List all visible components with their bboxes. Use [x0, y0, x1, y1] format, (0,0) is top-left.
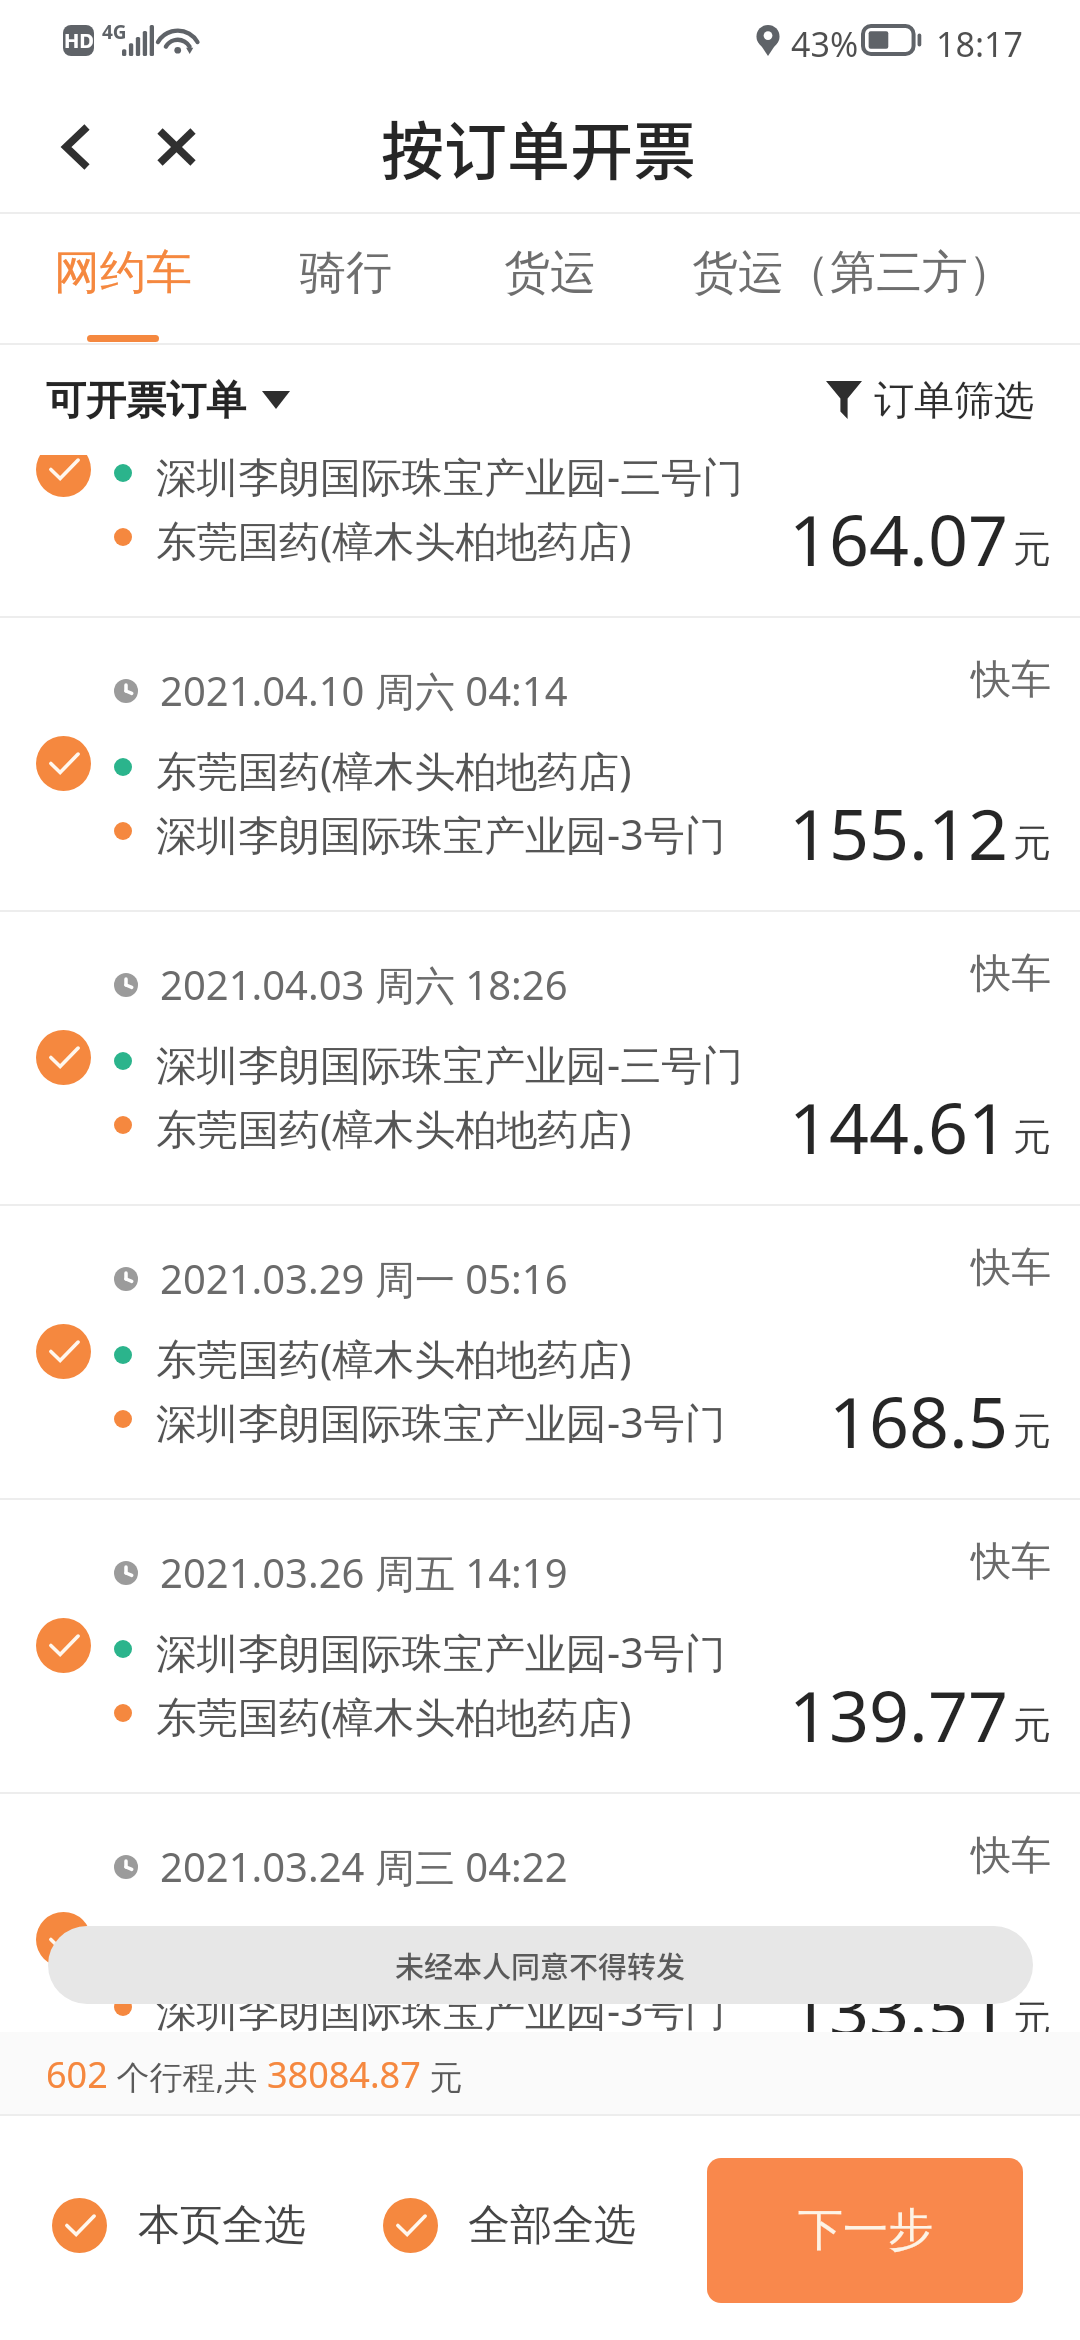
staticText: 订单筛选 — [874, 375, 1034, 425]
button[interactable]: 本页全选 — [52, 2198, 306, 2253]
staticText: 2021.04.03 周六 18:26 — [160, 957, 568, 1012]
staticText: 43% — [791, 21, 859, 67]
staticText: 未经本人同意不得转发 — [395, 1944, 686, 1986]
button[interactable]: 货运 — [480, 214, 619, 345]
staticText: HD — [64, 27, 94, 54]
staticText: 元 — [1013, 525, 1051, 573]
staticText: 货运（第三方） — [692, 244, 1014, 302]
staticText: 深圳李朗国际珠宝产业园-3号门 — [156, 1394, 726, 1450]
button[interactable]: Select order — [0, 455, 1080, 618]
staticText: 2021.04.10 周六 04:14 — [160, 663, 568, 718]
staticText: 网约车 — [54, 244, 192, 302]
staticText: 本页全选 — [138, 2199, 306, 2252]
button[interactable]: 可开票订单 — [46, 375, 290, 425]
staticText: 深圳李朗国际珠宝产业园-三号门 — [156, 455, 744, 504]
staticText: 深圳李朗国际珠宝产业园-3号门 — [156, 1624, 726, 1680]
staticText: 164.07 — [789, 491, 1008, 586]
button[interactable]: Select order — [36, 1030, 91, 1085]
staticText: 下一步 — [798, 2202, 933, 2259]
staticText: 2021.03.29 周一 05:16 — [160, 1251, 568, 1306]
staticText: 快车 — [971, 948, 1051, 998]
staticText: 东莞国药(樟木头柏地药店) — [156, 1688, 632, 1744]
button[interactable]: Select order — [36, 455, 91, 497]
staticText: 深圳李朗国际珠宝产业园-3号门 — [156, 1982, 726, 2032]
staticText: 东莞国药(樟木头柏地药店) — [156, 1918, 632, 1974]
staticText: 元 — [1013, 819, 1051, 867]
staticText: 快车 — [971, 1830, 1051, 1880]
staticText: 快车 — [971, 1242, 1051, 1292]
button[interactable]: Select order — [0, 1794, 1080, 2032]
button[interactable]: 全部全选 — [383, 2198, 636, 2253]
staticText: 元 — [1013, 1407, 1051, 1455]
staticText: 全部全选 — [468, 2199, 636, 2252]
staticText: 18:17 — [936, 21, 1023, 67]
button[interactable]: Close — [140, 111, 212, 183]
button[interactable]: Select order — [36, 736, 91, 791]
button[interactable]: 骑行 — [276, 214, 415, 345]
staticText: 东莞国药(樟木头柏地药店) — [156, 1330, 632, 1386]
button[interactable]: Select order — [0, 912, 1080, 1206]
staticText: 2021.03.24 周三 04:22 — [160, 1839, 568, 1894]
staticText: 深圳李朗国际珠宝产业园-3号门 — [156, 806, 726, 862]
staticText: 东莞国药(樟木头柏地药店) — [156, 512, 632, 568]
staticText: 快车 — [971, 1536, 1051, 1586]
button[interactable]: Select order — [0, 1500, 1080, 1794]
button[interactable]: Select order — [0, 1206, 1080, 1500]
staticText: 东莞国药(樟木头柏地药店) — [156, 1100, 632, 1156]
button[interactable]: 订单筛选 — [826, 375, 1034, 425]
button[interactable]: Select order — [36, 1324, 91, 1379]
staticText: 2021.03.26 周五 14:19 — [160, 1545, 568, 1600]
staticText: 133.51 — [789, 1961, 1008, 2032]
staticText: 144.61 — [789, 1079, 1008, 1174]
button[interactable]: Select order — [36, 1912, 91, 1967]
staticText: 168.5 — [829, 1373, 1008, 1468]
button[interactable]: 下一步 — [707, 2158, 1023, 2303]
staticText: 元 — [1013, 1113, 1051, 1161]
staticText: 元 — [421, 2054, 463, 2099]
button[interactable]: 货运（第三方） — [678, 214, 1027, 345]
staticText: 139.77 — [789, 1667, 1008, 1762]
staticText: 155.12 — [789, 785, 1008, 880]
staticText: 元 — [1013, 1701, 1051, 1749]
staticText: 4G — [102, 19, 127, 45]
button[interactable]: 网约车 — [33, 214, 212, 345]
staticText: 快车 — [971, 654, 1051, 704]
staticText: 602 — [46, 2050, 108, 2099]
staticText: 深圳李朗国际珠宝产业园-三号门 — [156, 1036, 744, 1092]
staticText: 个行程,共 — [108, 2054, 267, 2099]
staticText: 骑行 — [300, 244, 392, 302]
button[interactable]: Select order — [0, 618, 1080, 912]
button[interactable]: Back — [40, 111, 112, 183]
staticText: 元 — [1013, 1995, 1051, 2032]
staticText: 货运 — [504, 244, 596, 302]
staticText: 按订单开票 — [381, 101, 696, 192]
staticText: 38084.87 — [267, 2050, 421, 2099]
staticText: 可开票订单 — [46, 375, 246, 425]
staticText: 东莞国药(樟木头柏地药店) — [156, 742, 632, 798]
button[interactable]: Select order — [36, 1618, 91, 1673]
